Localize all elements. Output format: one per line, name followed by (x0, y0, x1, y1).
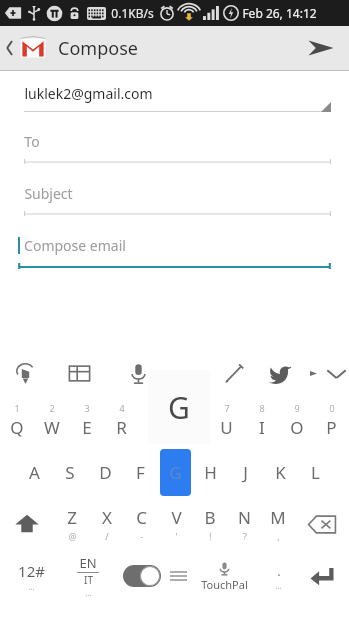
button[interactable]: C (124, 498, 159, 550)
button[interactable]: Edit (210, 352, 258, 394)
staticText: Compose email (24, 236, 126, 255)
button[interactable]: Subject (24, 184, 331, 217)
button[interactable]: 5 (139, 394, 174, 446)
staticText: R (116, 416, 127, 439)
button[interactable]: To (24, 132, 331, 165)
button[interactable]: J (228, 446, 263, 498)
staticText: ? (243, 530, 247, 542)
staticText: B (204, 506, 216, 529)
staticText: L (311, 461, 320, 484)
button[interactable]: M (261, 498, 295, 550)
staticText: Z (67, 506, 77, 529)
staticText: - (140, 530, 143, 542)
staticText: @ (68, 530, 77, 542)
staticText: A (29, 461, 40, 484)
button[interactable]: N (227, 498, 261, 550)
staticText: 12# (18, 561, 45, 581)
staticText: J (243, 461, 248, 484)
staticText: , (277, 530, 280, 542)
staticText: V (171, 506, 182, 529)
staticText: 7 (224, 402, 230, 414)
staticText: W (44, 416, 60, 439)
button[interactable]: Backspace (295, 498, 349, 550)
button[interactable]: . (261, 550, 295, 602)
button[interactable]: 2 (34, 394, 69, 446)
button[interactable]: S (52, 446, 88, 498)
button[interactable]: 9 (279, 394, 314, 446)
staticText: . (277, 562, 281, 580)
button[interactable]: K (263, 446, 298, 498)
staticText: Compose (58, 36, 138, 61)
button[interactable]: B (193, 498, 227, 550)
button[interactable]: V (159, 498, 193, 550)
staticText: H (204, 461, 217, 484)
staticText: IT (84, 573, 93, 587)
button[interactable]: 7 (209, 394, 244, 446)
staticText: 8 (259, 402, 265, 414)
staticText: C (136, 506, 147, 529)
button[interactable]: 0 (314, 394, 349, 446)
staticText: ! (209, 530, 212, 542)
button[interactable]: Twitter (258, 352, 302, 394)
button[interactable]: Language layout (50, 352, 108, 394)
staticText: 3 (84, 402, 90, 414)
button[interactable]: 1 (0, 394, 34, 446)
staticText: luklek2@gmail.com (24, 84, 153, 103)
staticText: TouchPal (201, 577, 248, 592)
button[interactable]: A (16, 446, 52, 498)
staticText: M (270, 506, 286, 529)
staticText: ' (175, 530, 178, 542)
button[interactable]: D (88, 446, 123, 498)
staticText: U (220, 416, 233, 439)
staticText: F (136, 461, 145, 484)
button[interactable]: Space (170, 550, 187, 602)
staticText: D (99, 461, 112, 484)
staticText: 9 (294, 402, 300, 414)
button[interactable]: F (123, 446, 158, 498)
staticText: G (169, 461, 182, 484)
button[interactable]: More (302, 352, 324, 394)
button[interactable]: 12# (0, 550, 62, 602)
staticText: ... (28, 581, 35, 592)
button[interactable]: H (193, 446, 228, 498)
button[interactable]: Hide keyboard (324, 352, 349, 394)
staticText: ... (275, 580, 282, 591)
button[interactable]: Gesture input (0, 352, 50, 394)
staticText: 2 (49, 402, 55, 414)
button[interactable]: Send (293, 26, 349, 70)
button[interactable]: Compose (0, 26, 138, 70)
button[interactable]: 6 (174, 394, 209, 446)
button[interactable]: TouchPal (187, 550, 261, 602)
button[interactable]: Shift (0, 498, 54, 550)
staticText: K (275, 461, 286, 484)
button[interactable]: G (158, 446, 193, 498)
button[interactable]: X (89, 498, 124, 550)
button[interactable]: Compose email (18, 236, 331, 271)
staticText: 0.1KB/s (111, 5, 154, 21)
staticText: N (238, 506, 251, 529)
staticText: ... (85, 587, 92, 598)
button[interactable]: Voice input (108, 352, 168, 394)
staticText: G (168, 387, 190, 428)
staticText: Q (10, 416, 24, 439)
staticText: E (82, 416, 92, 439)
button[interactable]: Enter (295, 550, 349, 602)
staticText: O (290, 416, 304, 439)
button[interactable]: 8 (244, 394, 279, 446)
button[interactable]: 3 (69, 394, 104, 446)
button[interactable]: luklek2@gmail.com (24, 84, 331, 112)
button[interactable]: L (298, 446, 333, 498)
staticText: To (24, 132, 40, 151)
staticText: Feb 26, 14:12 (242, 5, 317, 21)
staticText: Subject (24, 184, 73, 203)
button[interactable]: EN (62, 550, 114, 602)
button[interactable]: Z (54, 498, 89, 550)
button[interactable]: Toggle (114, 550, 170, 602)
staticText: EN (79, 554, 97, 572)
staticText: Y (187, 416, 197, 439)
staticText: X (102, 506, 112, 529)
staticText: 4 (119, 402, 125, 414)
button[interactable]: 4 (104, 394, 139, 446)
